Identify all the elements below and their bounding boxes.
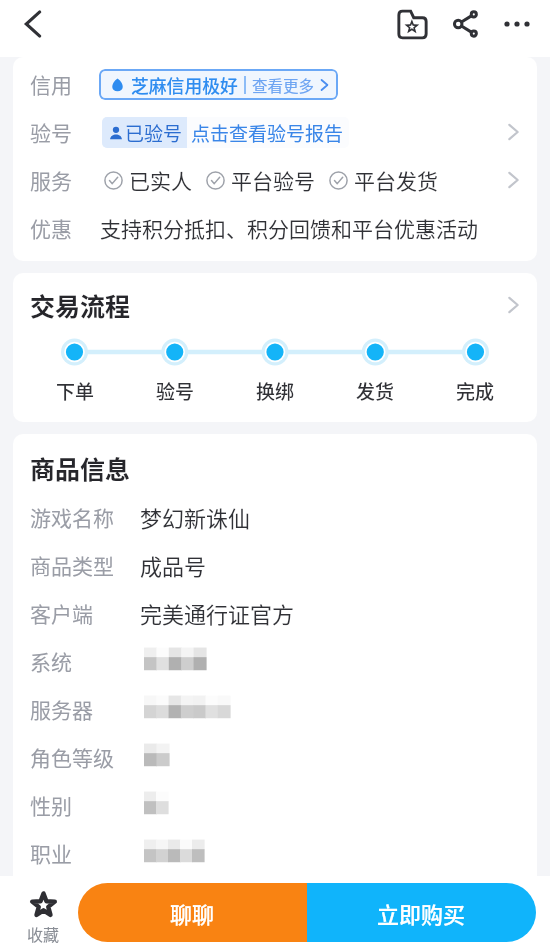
- button[interactable]: Favorite: [10, 880, 76, 945]
- button[interactable]: More options: [493, 0, 541, 48]
- staticText: 梦幻新诛仙: [140, 501, 251, 533]
- staticText: 商品信息: [30, 450, 131, 486]
- staticText: 完成: [456, 377, 495, 405]
- button[interactable]: 信用: [30, 60, 521, 108]
- staticText: 支持积分抵扣、积分回馈和平台优惠活动: [100, 213, 478, 243]
- staticText: 客户端: [30, 598, 93, 628]
- staticText: 验号: [30, 117, 72, 147]
- staticText: 发货: [356, 377, 395, 405]
- staticText: 游戏名称: [30, 502, 114, 532]
- button[interactable]: 服务: [30, 156, 521, 204]
- staticText: 服务器: [30, 694, 93, 724]
- staticText: 验号: [156, 377, 195, 405]
- button[interactable]: 聊聊: [78, 883, 307, 942]
- staticText: 完美通行证官方: [140, 597, 295, 629]
- staticText: 职业: [30, 838, 72, 868]
- button[interactable]: Back: [8, 0, 57, 48]
- staticText: 已实人: [129, 165, 192, 195]
- button[interactable]: 交易流程: [30, 273, 521, 337]
- staticText: 收藏: [27, 922, 60, 945]
- staticText: 优惠: [30, 213, 72, 243]
- staticText: 换绑: [256, 377, 295, 405]
- staticText: 点击查看验号报告: [191, 119, 344, 147]
- staticText: 交易流程: [30, 287, 131, 323]
- button[interactable]: 立即购买: [307, 883, 536, 942]
- staticText: 已验号: [125, 119, 183, 147]
- staticText: 服务: [30, 165, 72, 195]
- staticText: 成品号: [140, 549, 207, 581]
- staticText: 商品类型: [30, 550, 114, 580]
- staticText: 平台发货: [354, 165, 438, 195]
- button[interactable]: Share: [439, 0, 493, 48]
- staticText: 聊聊: [170, 897, 215, 929]
- staticText: 系统: [30, 646, 72, 676]
- staticText: 查看更多: [252, 74, 315, 96]
- button[interactable]: 验号: [30, 108, 521, 156]
- staticText: 信用: [30, 69, 72, 99]
- staticText: 角色等级: [30, 742, 114, 772]
- staticText: 下单: [56, 377, 95, 405]
- staticText: 立即购买: [377, 897, 466, 929]
- button[interactable]: Favorites folder: [385, 0, 439, 48]
- staticText: 平台验号: [231, 165, 315, 195]
- staticText: 性别: [30, 790, 72, 820]
- staticText: 芝麻信用极好: [131, 72, 238, 98]
